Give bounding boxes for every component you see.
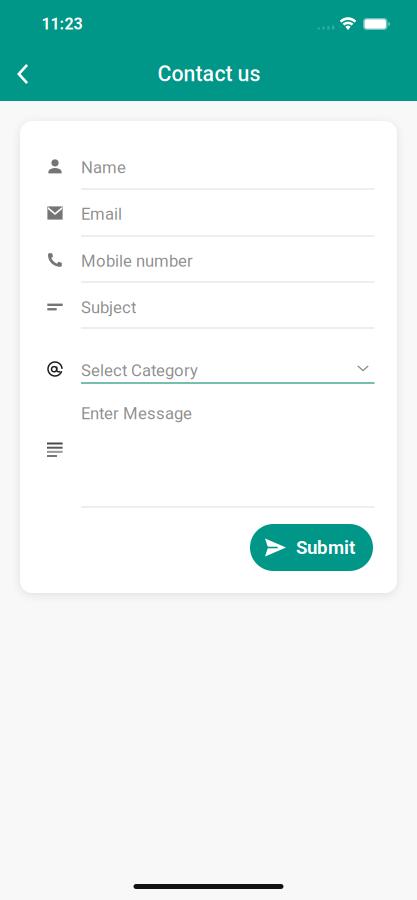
- staticText: Email: [81, 204, 122, 224]
- staticText: Submit: [296, 537, 355, 558]
- staticText: Enter Message: [81, 404, 192, 423]
- button[interactable]: Select category: [350, 355, 376, 381]
- staticText: 11:23: [41, 15, 82, 33]
- staticText: Mobile number: [81, 251, 193, 271]
- staticText: Contact us: [157, 61, 260, 86]
- staticText: Name: [81, 158, 126, 177]
- staticText: Select Category: [81, 361, 198, 380]
- button[interactable]: Submit: [250, 524, 373, 571]
- button[interactable]: Back: [1, 52, 45, 96]
- staticText: Subject: [81, 298, 136, 317]
